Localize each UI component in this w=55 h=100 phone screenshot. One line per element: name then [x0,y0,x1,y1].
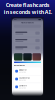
staticText: 42 cards [19,71,26,73]
staticText: US History [19,85,27,87]
staticText: 88 cards [19,79,26,81]
staticText: Recent Decks [14,65,25,66]
staticText: Flashcard Decks [21,22,34,24]
staticText: Biology 101 [19,69,27,71]
button[interactable]: US History [14,83,41,91]
staticText: 9:41 [14,19,17,20]
staticText: Create flashcards in seconds with AI. [3,1,51,15]
staticText: Spanish Verbs [19,77,30,79]
button[interactable]: Spanish Verbs [14,75,41,83]
button[interactable]: Biology 101 [14,67,41,75]
